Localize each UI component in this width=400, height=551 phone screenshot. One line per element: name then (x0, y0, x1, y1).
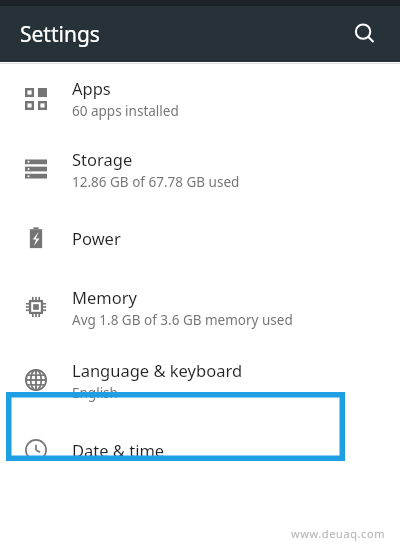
button[interactable]: Memory (0, 271, 400, 343)
staticText: Avg 1.8 GB of 3.6 GB memory used (72, 311, 293, 329)
staticText: 60 apps installed (72, 102, 179, 120)
staticText: English (72, 384, 118, 402)
staticText: www.deuaq.com (291, 526, 386, 541)
button[interactable]: Apps (0, 64, 400, 133)
button[interactable]: Language & keyboard (0, 343, 400, 417)
staticText: Storage (72, 148, 133, 170)
staticText: Apps (72, 77, 111, 99)
staticText: Memory (72, 286, 137, 308)
button[interactable]: Power (0, 205, 400, 271)
staticText: Settings (20, 20, 100, 49)
button[interactable]: Search (341, 10, 389, 58)
staticText: Power (72, 227, 121, 249)
staticText: Language & keyboard (72, 359, 243, 381)
button[interactable]: Date & time (0, 417, 400, 483)
staticText: 12.86 GB of 67.78 GB used (72, 173, 240, 191)
button[interactable]: Storage (0, 133, 400, 205)
staticText: Date & time (72, 439, 165, 461)
